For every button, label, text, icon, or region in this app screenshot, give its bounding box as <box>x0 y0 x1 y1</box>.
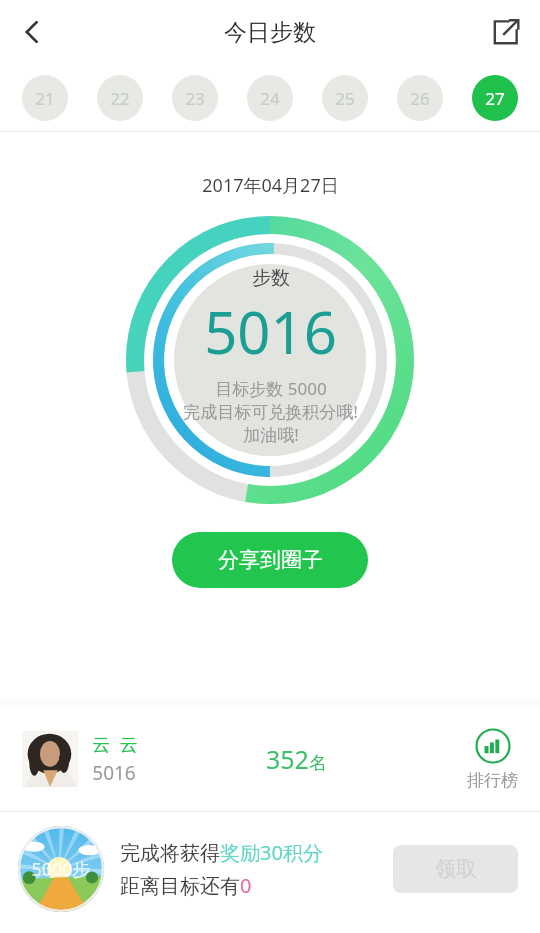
button[interactable]: 分享到圈子 <box>172 532 368 588</box>
staticText: 24 <box>260 87 280 110</box>
staticText: 加油哦! <box>243 423 299 446</box>
button[interactable]: 21 <box>22 75 68 121</box>
button[interactable]: 26 <box>397 75 443 121</box>
button[interactable]: 27 <box>472 75 518 121</box>
button[interactable]: 24 <box>247 75 293 121</box>
button[interactable]: 云 云 <box>0 707 540 811</box>
staticText: 352名 <box>266 742 327 776</box>
staticText: 21 <box>35 87 55 110</box>
staticText: 2017年04月27日 <box>202 173 339 198</box>
staticText: 26 <box>410 87 430 110</box>
button[interactable]: Share <box>480 6 532 58</box>
staticText: 25 <box>335 87 355 110</box>
button[interactable]: 排行榜 <box>467 728 518 791</box>
button[interactable]: 25 <box>322 75 368 121</box>
button[interactable]: 23 <box>172 75 218 121</box>
staticText: 今日步数 <box>224 18 316 47</box>
staticText: 5000步 <box>31 857 91 882</box>
staticText: 22 <box>110 87 130 110</box>
staticText: 27 <box>485 87 505 110</box>
staticText: 目标步数 5000 <box>215 377 327 400</box>
button[interactable]: Back <box>6 6 58 58</box>
staticText: 步数 <box>252 266 290 290</box>
button[interactable]: 22 <box>97 75 143 121</box>
staticText: 5016 <box>204 292 337 371</box>
staticText: 排行榜 <box>467 770 518 791</box>
staticText: 完成目标可兑换积分哦! <box>183 400 358 423</box>
staticText: 完成将获得奖励30积分 <box>120 839 323 866</box>
staticText: 领取 <box>435 856 477 882</box>
staticText: 23 <box>185 87 205 110</box>
staticText: 5016 <box>92 760 136 786</box>
staticText: 云 云 <box>92 732 138 757</box>
staticText: 距离目标还有0 <box>120 872 252 899</box>
button[interactable]: 领取 <box>393 845 518 893</box>
staticText: 分享到圈子 <box>218 547 323 573</box>
